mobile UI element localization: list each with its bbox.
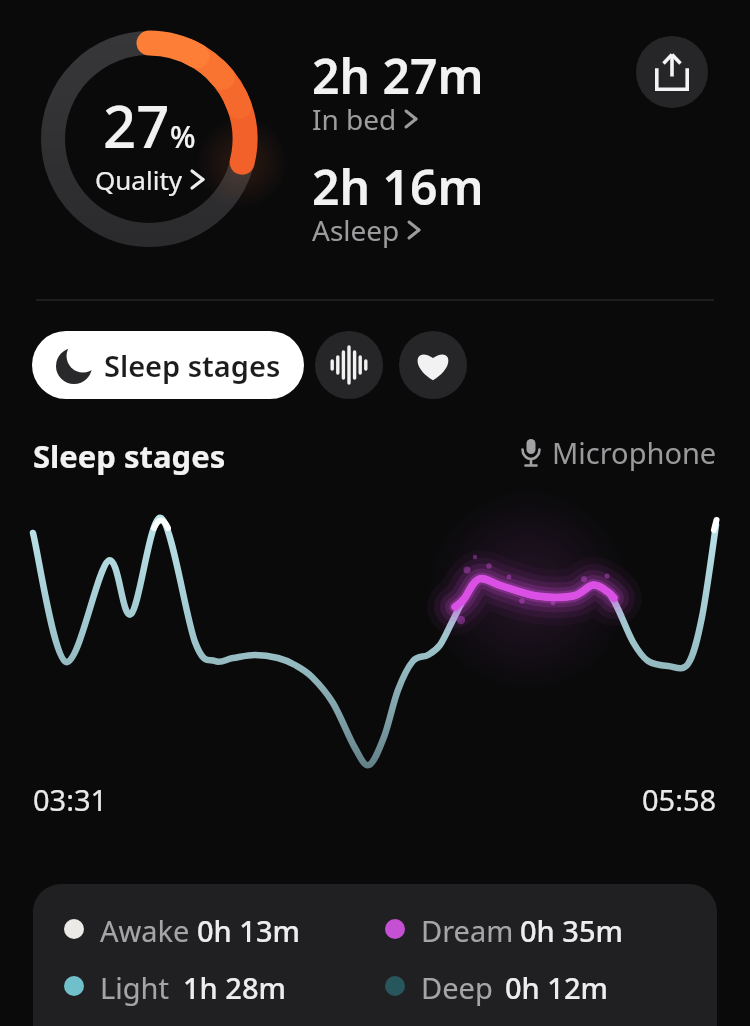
staticText: % (170, 116, 196, 157)
staticText: Asleep (312, 211, 400, 249)
staticText: 2h 16m (312, 154, 484, 219)
button[interactable] (315, 331, 383, 399)
staticText: Deep (421, 968, 493, 1007)
button[interactable]: In bed (312, 100, 416, 138)
staticText: 0h 35m (520, 911, 623, 950)
staticText: Quality (95, 162, 183, 197)
staticText: Sleep stages (104, 346, 281, 385)
staticText: In bed (312, 100, 397, 138)
button[interactable]: Sleep stages (32, 331, 304, 399)
staticText: 27 (103, 86, 170, 165)
staticText: Sleep stages (33, 435, 226, 477)
staticText: Awake (100, 911, 190, 950)
staticText: 0h 12m (505, 968, 608, 1007)
button[interactable]: Quality (95, 162, 203, 197)
staticText: Dream (421, 911, 514, 950)
staticText: Microphone (552, 433, 717, 472)
staticText: 0h 13m (197, 911, 300, 950)
staticText: 05:58 (642, 780, 717, 819)
staticText: Light (100, 968, 169, 1007)
staticText: 1h 28m (183, 968, 286, 1007)
button[interactable] (636, 36, 708, 108)
staticText: 2h 27m (312, 43, 484, 108)
button[interactable] (399, 331, 467, 399)
button[interactable]: Asleep (312, 211, 419, 249)
staticText: 03:31 (33, 780, 108, 819)
